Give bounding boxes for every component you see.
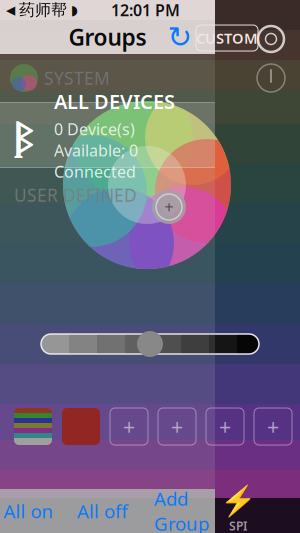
staticText: 药师帮 (19, 0, 67, 20)
button[interactable]: All off (69, 491, 135, 531)
staticText: Add Group (154, 486, 209, 533)
button[interactable]: ᛒ (0, 102, 215, 168)
button[interactable]: Brightness (137, 331, 163, 357)
staticText: ⚡ (219, 484, 256, 518)
staticText: + (219, 412, 231, 441)
staticText: Groups (68, 22, 146, 52)
staticText: ᛒ (13, 110, 33, 160)
button[interactable]: All on (0, 491, 61, 531)
button[interactable]: CUSTOM (196, 25, 258, 51)
button[interactable]: Add preset (110, 408, 148, 445)
staticText: ◀ (6, 3, 15, 17)
staticText: + (123, 412, 135, 441)
button[interactable]: Red preset (62, 408, 100, 445)
button[interactable]: Settings (254, 22, 288, 56)
staticText: ◗ (71, 2, 78, 17)
staticText: 12:01 PM (111, 0, 180, 21)
staticText: USER DEFINED (14, 183, 137, 206)
staticText: 0 Device(s) Available; 0 Connected (54, 118, 138, 182)
staticText: + (164, 196, 173, 218)
staticText: + (267, 412, 279, 441)
staticText: All off (77, 499, 128, 523)
staticText: SYSTEM (44, 66, 110, 89)
staticText: SPI (229, 518, 247, 533)
button[interactable]: Add preset (158, 408, 196, 445)
button[interactable]: Refresh (163, 20, 197, 54)
staticText: CUSTOM (196, 28, 258, 48)
staticText: ALL DEVICES (54, 88, 175, 114)
button[interactable]: Add preset (206, 408, 244, 445)
button[interactable]: Add Group (143, 491, 219, 531)
button[interactable]: Rainbow preset (14, 408, 52, 445)
staticText: All on (3, 499, 53, 523)
staticText: ↻ (167, 20, 192, 54)
button[interactable]: Power (255, 62, 287, 94)
staticText: + (171, 412, 183, 441)
button[interactable]: Add preset (254, 408, 292, 445)
